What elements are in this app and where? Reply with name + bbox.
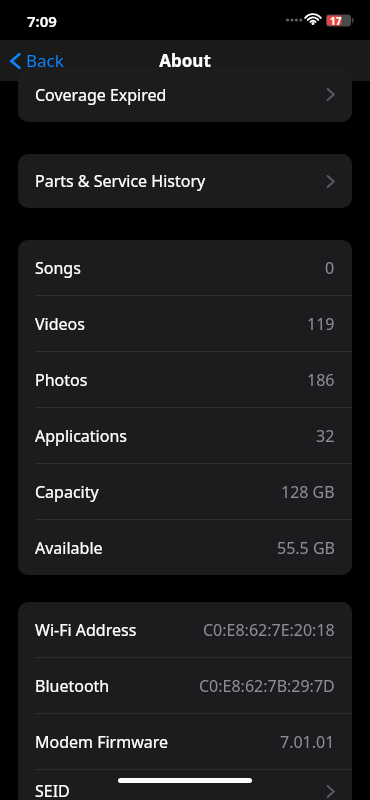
staticText: Photos	[35, 369, 88, 391]
staticText: 55.5 GB	[277, 537, 335, 559]
button[interactable]: Capacity	[18, 464, 352, 519]
button[interactable]: SEID	[18, 770, 352, 800]
button[interactable]: Coverage Expired	[18, 67, 352, 122]
staticText: SEID	[35, 780, 70, 800]
staticText: 119	[307, 313, 335, 335]
staticText: Capacity	[35, 481, 99, 503]
staticText: Modem Firmware	[35, 731, 169, 753]
staticText: 17	[330, 14, 342, 28]
staticText: 32	[316, 425, 335, 447]
staticText: C0:E8:62:7B:29:7D	[199, 675, 335, 697]
staticText: 7.01.01	[280, 731, 335, 753]
staticText: 128 GB	[281, 481, 335, 503]
button[interactable]: Songs	[18, 240, 352, 295]
staticText: Coverage Expired	[35, 84, 167, 106]
staticText: Applications	[35, 425, 127, 447]
staticText: About	[159, 49, 211, 72]
staticText: Bluetooth	[35, 675, 110, 697]
staticText: 0	[325, 257, 335, 279]
button[interactable]: Videos	[18, 296, 352, 351]
staticText: Songs	[35, 257, 81, 279]
staticText: Parts & Service History	[35, 170, 206, 192]
button[interactable]: Parts & Service History	[18, 154, 352, 208]
staticText: Back	[26, 49, 64, 72]
staticText: C0:E8:62:7E:20:18	[203, 619, 335, 641]
staticText: Videos	[35, 313, 85, 335]
button[interactable]: Available	[18, 520, 352, 575]
button[interactable]: Applications	[18, 408, 352, 463]
staticText: Wi-Fi Address	[35, 619, 137, 641]
button[interactable]: Bluetooth	[18, 658, 352, 713]
button[interactable]: Wi-Fi Address	[18, 602, 352, 657]
staticText: Available	[35, 537, 103, 559]
staticText: 7:09	[27, 11, 57, 31]
button[interactable]: Photos	[18, 352, 352, 407]
button[interactable]: Modem Firmware	[18, 714, 352, 769]
staticText: 186	[307, 369, 335, 391]
button[interactable]: Back	[0, 45, 74, 76]
